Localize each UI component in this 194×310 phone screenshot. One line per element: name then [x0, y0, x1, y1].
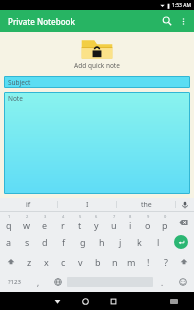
- button[interactable]: Note: [4, 92, 190, 194]
- button[interactable]: Change language: [48, 272, 67, 292]
- button[interactable]: z: [21, 252, 38, 272]
- staticText: e: [42, 219, 48, 231]
- staticText: 8: [129, 214, 132, 219]
- button[interactable]: Search: [158, 12, 176, 30]
- staticText: 1:53 AM: [172, 2, 191, 9]
- button[interactable]: 5: [71, 212, 88, 232]
- button[interactable]: Switch keyboard: [160, 292, 188, 310]
- button[interactable]: Shift: [174, 252, 194, 272]
- staticText: t: [78, 219, 82, 231]
- button[interactable]: 7: [105, 212, 122, 232]
- staticText: f: [62, 236, 66, 248]
- button[interactable]: Shift: [0, 252, 21, 272]
- staticText: j: [119, 236, 122, 248]
- button[interactable]: s: [18, 232, 36, 252]
- button[interactable]: I: [58, 198, 116, 211]
- staticText: ,: [37, 277, 40, 288]
- button[interactable]: f: [54, 232, 73, 252]
- staticText: 5: [79, 214, 82, 219]
- staticText: 1: [8, 214, 11, 219]
- button[interactable]: More options: [176, 14, 191, 29]
- staticText: .: [161, 277, 164, 288]
- button[interactable]: 4: [54, 212, 71, 232]
- staticText: y: [94, 219, 99, 231]
- staticText: !: [147, 256, 150, 268]
- button[interactable]: ,: [29, 272, 48, 292]
- staticText: b: [95, 256, 101, 268]
- staticText: Subject: [8, 78, 31, 87]
- button[interactable]: Home: [71, 292, 99, 310]
- staticText: r: [61, 219, 65, 231]
- staticText: 2: [26, 214, 29, 219]
- button[interactable]: the: [117, 198, 175, 211]
- staticText: w: [23, 219, 31, 231]
- button[interactable]: l: [149, 232, 168, 252]
- staticText: a: [6, 236, 12, 248]
- staticText: 6: [95, 214, 98, 219]
- button[interactable]: k: [130, 232, 149, 252]
- button[interactable]: 0: [156, 212, 173, 232]
- button[interactable]: !: [140, 252, 157, 272]
- staticText: k: [137, 236, 142, 248]
- staticText: 4: [62, 214, 65, 219]
- button[interactable]: c: [55, 252, 72, 272]
- button[interactable]: v: [72, 252, 89, 272]
- button[interactable]: Subject: [4, 76, 190, 88]
- staticText: Private Notebook: [8, 16, 75, 27]
- button[interactable]: ?123: [0, 272, 29, 292]
- staticText: i: [129, 219, 132, 231]
- button[interactable]: Voice input: [176, 198, 194, 211]
- button[interactable]: ?: [157, 252, 174, 272]
- button[interactable]: a: [0, 232, 18, 252]
- button[interactable]: n: [106, 252, 123, 272]
- button[interactable]: Back: [44, 292, 71, 310]
- button[interactable]: m: [123, 252, 140, 272]
- staticText: h: [99, 236, 105, 248]
- button[interactable]: Emoji: [172, 272, 194, 292]
- staticText: 7: [113, 214, 116, 219]
- button[interactable]: d: [36, 232, 54, 252]
- staticText: s: [25, 236, 30, 248]
- staticText: o: [145, 219, 151, 231]
- button[interactable]: j: [111, 232, 130, 252]
- button[interactable]: 2: [18, 212, 36, 232]
- staticText: l: [157, 236, 160, 248]
- button[interactable]: 3: [36, 212, 54, 232]
- staticText: g: [80, 236, 86, 248]
- button[interactable]: Add quick note: [0, 37, 194, 70]
- staticText: c: [61, 256, 66, 268]
- staticText: Add quick note: [74, 61, 120, 70]
- staticText: if: [26, 200, 31, 210]
- staticText: m: [127, 256, 136, 268]
- button[interactable]: 9: [139, 212, 156, 232]
- button[interactable]: Backspace: [173, 212, 194, 232]
- staticText: 0: [164, 214, 167, 219]
- staticText: v: [78, 256, 83, 268]
- staticText: x: [44, 256, 49, 268]
- staticText: u: [111, 219, 117, 231]
- staticText: n: [112, 256, 118, 268]
- staticText: p: [162, 219, 168, 231]
- staticText: ?: [164, 256, 168, 268]
- staticText: ?123: [8, 278, 21, 286]
- staticText: q: [6, 219, 12, 231]
- button[interactable]: h: [92, 232, 111, 252]
- button[interactable]: g: [73, 232, 92, 252]
- button[interactable]: b: [89, 252, 106, 272]
- button[interactable]: if: [0, 198, 57, 211]
- staticText: 3: [44, 214, 47, 219]
- staticText: 9: [147, 214, 150, 219]
- staticText: Note: [8, 94, 23, 103]
- button[interactable]: 8: [122, 212, 139, 232]
- staticText: d: [42, 236, 48, 248]
- staticText: the: [141, 200, 152, 210]
- button[interactable]: .: [153, 272, 172, 292]
- button[interactable]: x: [38, 252, 55, 272]
- button[interactable]: 1: [0, 212, 18, 232]
- button[interactable]: Enter: [168, 232, 194, 252]
- button[interactable]: 6: [88, 212, 105, 232]
- button[interactable]: Recent apps: [99, 292, 127, 310]
- staticText: z: [27, 256, 32, 268]
- staticText: I: [86, 200, 89, 210]
